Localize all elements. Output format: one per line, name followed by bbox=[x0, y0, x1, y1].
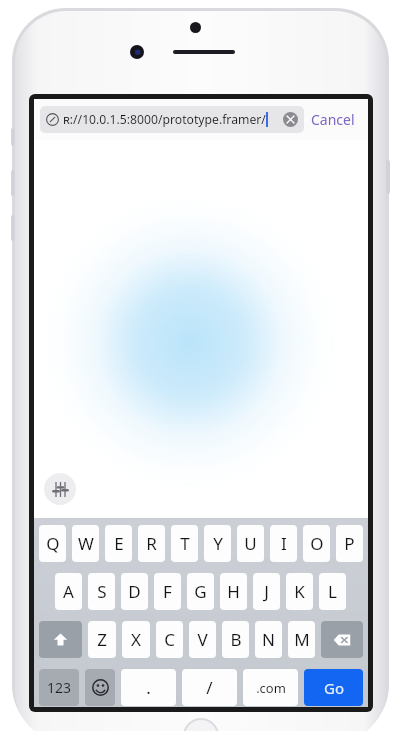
staticText: Cancel bbox=[311, 110, 355, 129]
button[interactable]: U bbox=[237, 525, 264, 562]
button[interactable]: P bbox=[336, 525, 363, 562]
staticText: P bbox=[344, 532, 355, 555]
button[interactable]: X bbox=[122, 621, 150, 658]
button[interactable]: H bbox=[220, 573, 247, 610]
button[interactable]: V bbox=[189, 621, 216, 658]
staticText: T bbox=[180, 532, 190, 555]
staticText: O bbox=[310, 532, 324, 555]
staticText: R bbox=[146, 532, 157, 555]
staticText: A bbox=[63, 580, 74, 603]
staticText: W bbox=[78, 532, 94, 555]
button[interactable]: A bbox=[55, 573, 82, 610]
button[interactable]: E bbox=[105, 525, 132, 562]
button[interactable]: B bbox=[222, 621, 249, 658]
staticText: H bbox=[227, 580, 240, 603]
staticText: V bbox=[197, 628, 208, 651]
staticText: K bbox=[294, 580, 305, 603]
button[interactable]: 123 bbox=[39, 669, 79, 706]
staticText: S bbox=[97, 580, 107, 603]
staticText: X bbox=[131, 628, 141, 651]
button[interactable]: K bbox=[286, 573, 313, 610]
button[interactable]: Go bbox=[304, 669, 363, 706]
button[interactable]: Clear text bbox=[283, 112, 298, 127]
button[interactable]: J bbox=[253, 573, 280, 610]
button[interactable]: R bbox=[138, 525, 165, 562]
button[interactable]: T bbox=[171, 525, 198, 562]
staticText: Go bbox=[324, 678, 344, 698]
button[interactable]: M bbox=[288, 621, 315, 658]
staticText: .com bbox=[256, 679, 286, 697]
staticText: Q bbox=[46, 532, 60, 555]
staticText: M bbox=[294, 628, 310, 651]
button[interactable]: S bbox=[88, 573, 115, 610]
staticText: / bbox=[206, 676, 213, 699]
staticText: N bbox=[262, 628, 275, 651]
staticText: C bbox=[164, 628, 175, 651]
staticText: G bbox=[194, 580, 207, 603]
button[interactable]: ʀ://10.0.1.5:8000/prototype.framer/ bbox=[40, 106, 304, 133]
button[interactable]: N bbox=[255, 621, 282, 658]
button[interactable]: Shift bbox=[39, 621, 82, 658]
staticText: ʀ://10.0.1.5:8000/prototype.framer/ bbox=[63, 111, 266, 128]
button[interactable]: Cancel bbox=[304, 106, 362, 133]
button[interactable]: I bbox=[270, 525, 297, 562]
staticText: F bbox=[163, 580, 172, 603]
button[interactable]: F bbox=[154, 573, 181, 610]
button[interactable]: C bbox=[156, 621, 183, 658]
button[interactable]: Backspace bbox=[321, 621, 363, 658]
button[interactable]: Emoji bbox=[85, 669, 115, 706]
button[interactable]: / bbox=[182, 669, 237, 706]
staticText: 123 bbox=[47, 678, 72, 697]
button[interactable]: Z bbox=[88, 621, 116, 658]
staticText: L bbox=[328, 580, 337, 603]
button[interactable]: Settings bbox=[44, 473, 76, 505]
button[interactable]: W bbox=[72, 525, 99, 562]
button[interactable]: L bbox=[319, 573, 346, 610]
staticText: I bbox=[281, 532, 287, 555]
button[interactable]: . bbox=[121, 669, 176, 706]
button[interactable]: Q bbox=[39, 525, 66, 562]
staticText: B bbox=[230, 628, 242, 651]
staticText: . bbox=[146, 676, 151, 699]
button[interactable]: G bbox=[187, 573, 214, 610]
button[interactable]: .com bbox=[243, 669, 298, 706]
staticText: U bbox=[244, 532, 257, 555]
staticText: J bbox=[264, 580, 269, 603]
staticText: E bbox=[114, 532, 124, 555]
button[interactable]: Y bbox=[204, 525, 231, 562]
button[interactable]: O bbox=[303, 525, 330, 562]
staticText: Y bbox=[213, 532, 223, 555]
button[interactable]: D bbox=[121, 573, 148, 610]
staticText: D bbox=[128, 580, 141, 603]
staticText: Z bbox=[97, 628, 107, 651]
